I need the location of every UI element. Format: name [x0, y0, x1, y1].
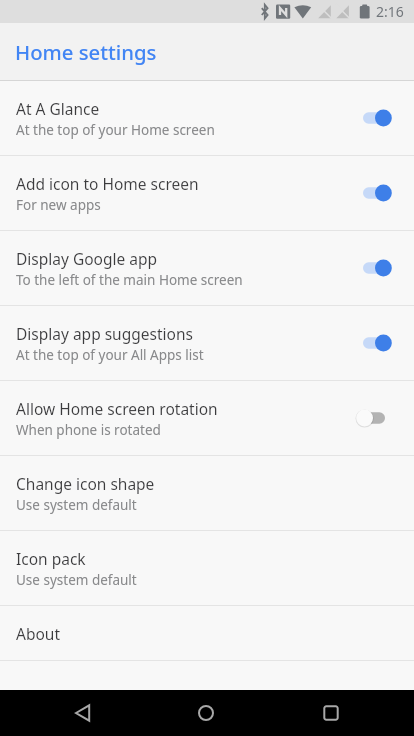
button[interactable]: Change icon shape	[0, 456, 414, 530]
staticText: Use system default	[16, 571, 137, 589]
staticText: Allow Home screen rotation	[16, 398, 218, 419]
staticText: At the top of your Home screen	[16, 121, 215, 139]
staticText: Home settings	[15, 38, 157, 66]
staticText: At the top of your All Apps list	[16, 346, 204, 364]
staticText: 2:16	[376, 2, 404, 21]
button[interactable]: Recents	[309, 691, 353, 735]
staticText: Display app suggestions	[16, 323, 193, 344]
staticText: Change icon shape	[16, 473, 155, 494]
staticText: About	[16, 623, 60, 644]
staticText: Icon pack	[16, 548, 86, 569]
button[interactable]: About	[0, 606, 414, 660]
button[interactable]: Back	[61, 691, 105, 735]
button[interactable]: Home	[184, 691, 228, 735]
button[interactable]: Add icon to Home screen	[0, 156, 414, 230]
button[interactable]: Display app suggestions	[0, 306, 414, 380]
staticText: When phone is rotated	[16, 421, 161, 439]
button[interactable]: Toggle on	[354, 248, 398, 288]
staticText: For new apps	[16, 196, 101, 214]
staticText: To the left of the main Home screen	[16, 271, 243, 289]
button[interactable]: Allow Home screen rotation	[0, 381, 414, 455]
button[interactable]: Icon pack	[0, 531, 414, 605]
button[interactable]: Toggle off	[350, 398, 394, 438]
button[interactable]: Toggle on	[354, 98, 398, 138]
button[interactable]: Toggle on	[354, 173, 398, 213]
staticText: At A Glance	[16, 98, 100, 119]
staticText: Use system default	[16, 496, 137, 514]
button[interactable]: Toggle on	[354, 323, 398, 363]
button[interactable]: Display Google app	[0, 231, 414, 305]
staticText: Add icon to Home screen	[16, 173, 199, 194]
button[interactable]: At A Glance	[0, 81, 414, 155]
staticText: Display Google app	[16, 248, 158, 269]
